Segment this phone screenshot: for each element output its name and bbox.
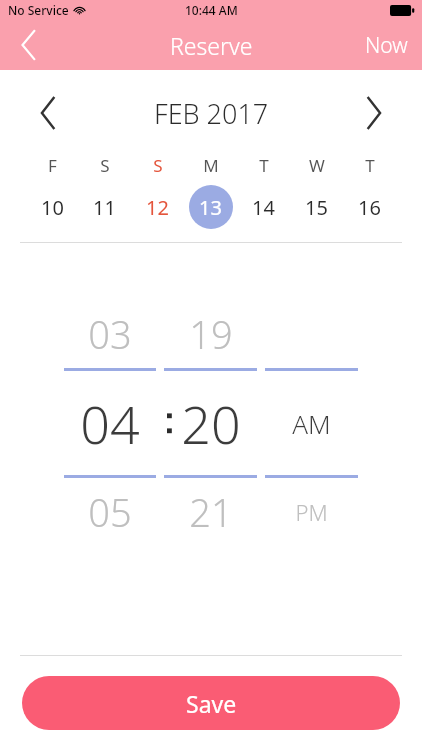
staticText: T [259, 154, 269, 177]
staticText: 05 [88, 486, 132, 538]
staticText: AM [292, 406, 331, 441]
staticText: F [48, 154, 57, 177]
staticText: 15 [305, 194, 328, 221]
staticText: 10 [41, 194, 64, 221]
button[interactable]: 12 [131, 185, 184, 229]
button[interactable]: 15 [290, 185, 343, 229]
staticText: S [100, 154, 110, 177]
staticText: Reserve [170, 30, 253, 61]
button[interactable]: Save [22, 676, 400, 730]
staticText: 20 [181, 388, 241, 459]
button[interactable]: Next month [348, 87, 400, 139]
button[interactable]: Back [0, 20, 56, 70]
staticText: 11 [93, 194, 116, 221]
staticText: 21 [189, 486, 233, 538]
staticText: FEB 2017 [154, 95, 269, 132]
staticText: 19 [189, 308, 233, 360]
staticText: PM [295, 497, 328, 527]
staticText: 13 [199, 194, 222, 221]
button[interactable]: 03 [60, 306, 160, 540]
staticText: 03 [88, 308, 132, 360]
staticText: T [365, 154, 375, 177]
button[interactable]: 13 [184, 185, 237, 229]
staticText: Now [365, 31, 408, 60]
staticText: S [153, 154, 163, 177]
staticText: 12 [146, 194, 169, 221]
staticText: 16 [358, 194, 381, 221]
staticText: W [309, 154, 325, 177]
button[interactable]: AM [261, 306, 362, 540]
button[interactable]: 11 [78, 185, 131, 229]
button[interactable]: 14 [237, 185, 290, 229]
staticText: 14 [252, 194, 275, 221]
staticText: 04 [80, 388, 140, 459]
button[interactable]: 16 [343, 185, 396, 229]
button[interactable]: 19 [160, 306, 261, 540]
staticText: M [203, 154, 219, 177]
staticText: No Service [8, 2, 69, 18]
staticText: 10:44 AM [185, 2, 238, 18]
button[interactable]: Now [351, 20, 422, 70]
button[interactable]: Previous month [22, 87, 74, 139]
staticText: Save [186, 688, 237, 719]
button[interactable]: 10 [26, 185, 78, 229]
